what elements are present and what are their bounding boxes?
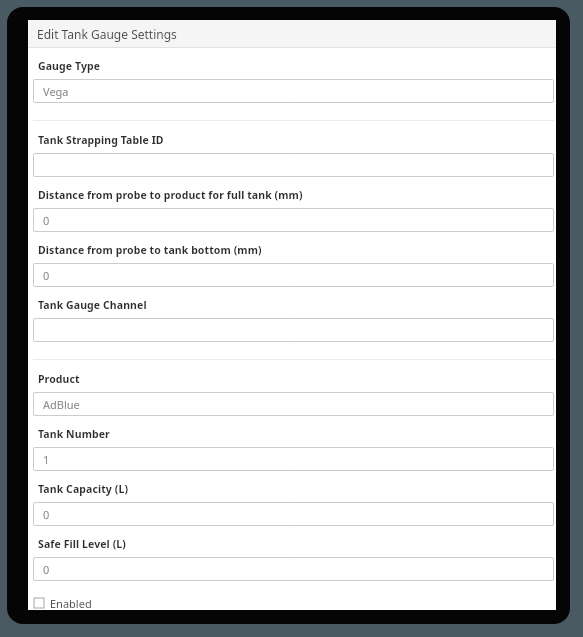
staticText: Product [38, 372, 80, 386]
staticText: Distance from probe to tank bottom (mm) [38, 243, 262, 257]
staticText: AdBlue [43, 397, 80, 412]
staticText: Edit Tank Gauge Settings [37, 26, 177, 42]
staticText: 0 [43, 213, 50, 228]
staticText: Distance from probe to product for full … [38, 188, 303, 202]
staticText: Vega [43, 84, 69, 99]
staticText: Safe Fill Level (L) [38, 537, 126, 551]
staticText: 0 [43, 507, 50, 522]
staticText: 0 [43, 268, 50, 283]
button[interactable] [33, 153, 554, 177]
staticText: Tank Strapping Table ID [38, 133, 164, 147]
button[interactable]: Vega [33, 79, 554, 103]
staticText: 0 [43, 562, 50, 577]
button[interactable]: 0 [33, 263, 554, 287]
staticText: Enabled [50, 596, 92, 609]
button[interactable]: Enabled [33, 595, 93, 610]
staticText: Gauge Type [38, 59, 101, 73]
staticText: Tank Capacity (L) [38, 482, 129, 496]
button[interactable] [33, 318, 554, 342]
button[interactable]: AdBlue [33, 392, 554, 416]
button[interactable]: 0 [33, 502, 554, 526]
staticText: Tank Gauge Channel [38, 298, 147, 312]
staticText: 1 [43, 452, 50, 467]
staticText: Tank Number [38, 427, 110, 441]
button[interactable]: 0 [33, 557, 554, 581]
button[interactable]: 1 [33, 447, 554, 471]
button[interactable]: 0 [33, 208, 554, 232]
